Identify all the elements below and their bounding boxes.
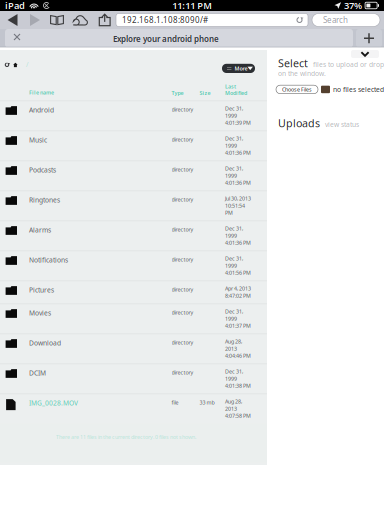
staticText: Aug 28, [225, 338, 242, 345]
button[interactable]: Ringtones [0, 190, 267, 220]
staticText: Aug 28, [225, 398, 242, 405]
staticText: Movies [29, 308, 51, 317]
staticText: Apr 4, 2013 [225, 285, 251, 292]
staticText: 4:01:36 PM [225, 179, 251, 186]
staticText: Ringtones [29, 195, 60, 204]
staticText: directory [171, 256, 193, 263]
staticText: Dec 31, [225, 225, 243, 232]
button[interactable]: 192.168.1.108:8090/# [116, 13, 308, 26]
staticText: Dec 31, [225, 165, 243, 172]
button[interactable]: Movies [0, 303, 267, 333]
staticText: directory [171, 309, 193, 316]
button[interactable]: iCloud Tabs [70, 11, 90, 29]
staticText: There are 11 files in the current direct… [56, 433, 196, 441]
staticText: directory [171, 106, 193, 113]
staticText: Pictures [29, 285, 54, 294]
staticText: Size [199, 89, 210, 97]
staticText: Dec 31, [225, 368, 243, 375]
staticText: files to upload or drop [313, 60, 384, 69]
staticText: directory [171, 166, 193, 173]
staticText: 1999 [225, 375, 237, 382]
staticText: on the window. [278, 69, 326, 78]
staticText: Modified [225, 89, 247, 97]
button[interactable]: Explore your android phone [5, 29, 353, 47]
button[interactable]: DCIM [0, 363, 267, 393]
staticText: Alarms [29, 225, 51, 234]
staticText: More [234, 65, 247, 72]
staticText: 1999 [225, 262, 237, 269]
staticText: Jul 30, 2013 [225, 195, 251, 202]
staticText: 1999 [225, 112, 237, 119]
staticText: Podcasts [29, 165, 56, 174]
staticText: Last [225, 83, 236, 90]
staticText: 11:11 PM [172, 0, 212, 12]
button[interactable]: New Tab [356, 29, 382, 47]
button[interactable]: Back [2, 11, 22, 29]
staticText: 37% [344, 0, 362, 12]
staticText: PM [225, 209, 233, 216]
staticText: Dec 31, [225, 308, 243, 315]
staticText: / [26, 60, 28, 69]
staticText: Select [278, 56, 308, 70]
staticText: 192.168.1.108:8090/# [122, 15, 208, 25]
button[interactable]: Download [0, 333, 267, 363]
staticText: 4:01:39 PM [225, 119, 251, 126]
staticText: 1999 [225, 142, 237, 149]
staticText: IMG_0028.MOV [29, 398, 78, 407]
button[interactable]: Android [0, 100, 267, 130]
button[interactable]: Podcasts [0, 160, 267, 190]
staticText: file [171, 399, 178, 406]
button[interactable]: IMG_0028.MOV [0, 393, 267, 423]
button[interactable]: Notifications [0, 250, 267, 280]
staticText: 10:51:54 [225, 202, 245, 209]
staticText: Music [29, 135, 47, 144]
staticText: 2013 [225, 405, 237, 412]
staticText: 4:01:37 PM [225, 322, 251, 329]
button[interactable]: Share [95, 11, 115, 29]
staticText: Uploads [278, 116, 320, 130]
staticText: 1999 [225, 315, 237, 322]
staticText: directory [171, 339, 193, 346]
staticText: directory [171, 286, 193, 293]
staticText: Download [29, 338, 61, 347]
button[interactable]: Bookmarks [47, 11, 67, 29]
button[interactable]: Refresh [2, 60, 12, 70]
button[interactable]: More [222, 64, 255, 73]
staticText: 1999 [225, 232, 237, 239]
staticText: File name [29, 89, 54, 96]
staticText: 8:47:02 PM [225, 292, 251, 299]
staticText: 2013 [225, 345, 237, 352]
staticText: 4:01:38 PM [225, 382, 251, 389]
staticText: 33 mb [199, 399, 214, 406]
staticText: DCIM [29, 368, 46, 377]
staticText: directory [171, 226, 193, 233]
staticText: Dec 31, [225, 255, 243, 262]
button[interactable]: / [23, 59, 31, 69]
button[interactable]: Music [0, 130, 267, 160]
staticText: 4:01:36 PM [225, 149, 251, 156]
staticText: directory [171, 196, 193, 203]
staticText: directory [171, 369, 193, 376]
button[interactable]: Pictures [0, 280, 267, 303]
staticText: Search [323, 15, 348, 25]
button[interactable]: Home [10, 60, 20, 70]
staticText: 4:01:56 PM [225, 269, 251, 276]
staticText: 1999 [225, 172, 237, 179]
staticText: iPad [5, 0, 25, 12]
staticText: no files selected [333, 85, 384, 94]
staticText: 4:04:46 PM [225, 352, 251, 359]
staticText: directory [171, 136, 193, 143]
button[interactable]: Alarms [0, 220, 267, 250]
staticText: 4:07:58 PM [225, 412, 251, 419]
staticText: view status [325, 120, 359, 129]
button[interactable]: Collapse [351, 50, 379, 58]
staticText: Notifications [29, 255, 68, 264]
button[interactable]: Choose Files [276, 85, 318, 94]
staticText: Choose Files [282, 86, 312, 93]
staticText: Dec 31, [225, 135, 243, 142]
button[interactable]: Forward [25, 11, 45, 29]
staticText: Explore your android phone [113, 33, 219, 44]
staticText: Type [171, 89, 183, 97]
staticText: 4:01:36 PM [225, 239, 251, 246]
button[interactable]: Search [312, 13, 380, 26]
